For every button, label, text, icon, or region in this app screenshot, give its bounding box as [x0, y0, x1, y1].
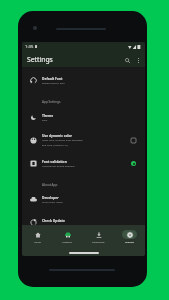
staticText: Default Font: [42, 76, 63, 80]
button[interactable]: Default Font: [22, 69, 145, 91]
staticText: The current version is v1.0.0, released …: [42, 223, 96, 226]
staticText: Khun Htanz Naing: [42, 200, 63, 203]
button[interactable]: Use dynamic color: [22, 129, 145, 151]
staticText: Home: [34, 240, 41, 243]
button[interactable]: Theme: [22, 106, 145, 128]
staticText: Dark: [42, 118, 48, 121]
staticText: Settings: [125, 240, 135, 243]
button[interactable]: More options: [133, 55, 144, 66]
staticText: Developer: [42, 195, 59, 199]
button[interactable]: Downloads: [83, 229, 114, 244]
staticText: Restore factory Font: [42, 81, 65, 84]
button[interactable]: Developer: [22, 188, 145, 210]
button[interactable]: Search: [122, 55, 133, 66]
staticText: Use dynamic color: [42, 133, 73, 137]
staticText: Category: [62, 240, 73, 243]
button[interactable]: Check Update: [22, 211, 145, 233]
staticText: Downloads: [92, 240, 105, 243]
staticText: Validate font before applying: [42, 164, 75, 167]
button[interactable]: Settings: [114, 229, 145, 244]
staticText: Font validation: [42, 159, 67, 163]
staticText: About App: [42, 183, 58, 187]
button[interactable]: Font validation: [22, 152, 145, 174]
staticText: Check Update: [42, 218, 65, 222]
staticText: Theme: [42, 113, 54, 117]
staticText: 1:35: [25, 44, 34, 50]
staticText: Settings: [27, 55, 53, 64]
button[interactable]: Category: [52, 229, 83, 244]
staticText: Apply color schemes from wallpaper and s…: [42, 138, 83, 147]
staticText: App Settings: [42, 100, 61, 104]
button[interactable]: Home: [22, 229, 52, 244]
